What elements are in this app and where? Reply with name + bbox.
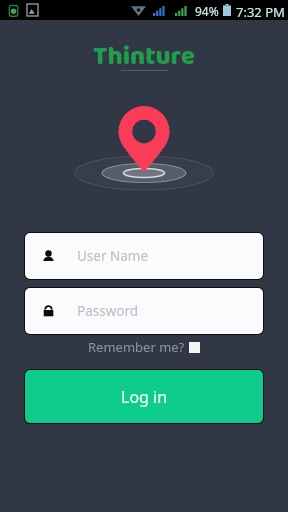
staticText: 7:32 PM	[236, 3, 285, 21]
staticText: User Name	[77, 247, 149, 265]
staticText: Log in	[121, 386, 168, 408]
button[interactable]: User Name	[25, 233, 263, 279]
staticText: Password	[77, 302, 139, 320]
staticText: 94%	[195, 3, 219, 19]
button[interactable]: Password	[25, 288, 263, 334]
staticText: Remember me?	[88, 338, 185, 356]
button[interactable]: Log in	[25, 370, 263, 423]
staticText: Thinture	[93, 36, 196, 70]
